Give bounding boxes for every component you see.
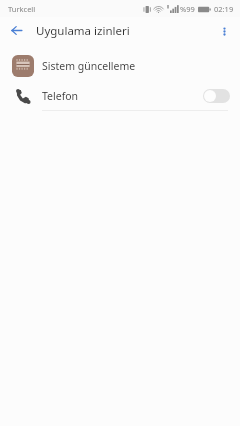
- staticText: Telefon: [42, 89, 203, 103]
- staticText: Sistem güncelleme: [42, 59, 230, 73]
- button[interactable]: Sistem güncelleme: [0, 49, 240, 82]
- button[interactable]: Back: [5, 19, 28, 42]
- button[interactable]: Telefon permission toggle: [203, 89, 230, 103]
- button[interactable]: More options: [213, 20, 235, 42]
- button[interactable]: Telefon: [0, 82, 240, 110]
- staticText: %99: [180, 4, 195, 14]
- staticText: 02:19: [214, 4, 234, 14]
- staticText: Uygulama izinleri: [36, 23, 130, 39]
- staticText: Turkcell: [8, 4, 36, 14]
